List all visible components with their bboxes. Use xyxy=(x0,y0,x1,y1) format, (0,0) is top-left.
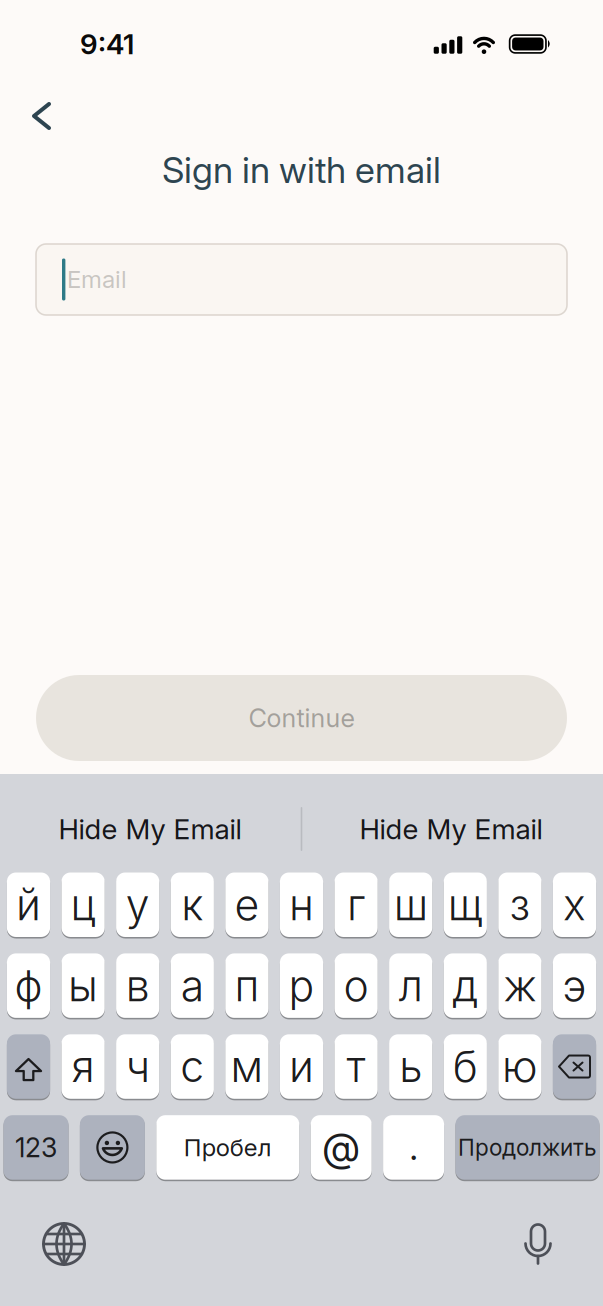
button[interactable] xyxy=(42,1222,86,1266)
button[interactable]: з xyxy=(498,872,541,937)
button[interactable]: Продолжить xyxy=(455,1115,599,1180)
button[interactable]: о xyxy=(334,953,378,1018)
staticText: э xyxy=(562,960,586,1011)
button[interactable]: а xyxy=(171,953,214,1018)
button[interactable]: ш xyxy=(389,872,432,937)
button[interactable]: б xyxy=(444,1034,487,1099)
staticText: а xyxy=(181,960,204,1011)
button[interactable]: щ xyxy=(444,872,487,937)
staticText: ы xyxy=(68,960,98,1011)
staticText: у xyxy=(126,880,150,930)
staticText: б xyxy=(453,1041,478,1092)
button[interactable]: д xyxy=(444,953,487,1018)
staticText: ю xyxy=(502,1041,538,1092)
button[interactable]: х xyxy=(553,872,596,937)
staticText: м xyxy=(230,1041,263,1092)
button[interactable]: ф xyxy=(7,953,50,1018)
button[interactable] xyxy=(524,1223,552,1264)
staticText: я xyxy=(72,1041,95,1092)
button[interactable]: @ xyxy=(311,1115,372,1180)
staticText: п xyxy=(234,960,259,1011)
button[interactable]: е xyxy=(225,872,268,937)
staticText: 9:41 xyxy=(80,27,134,60)
staticText: з xyxy=(509,880,530,930)
button[interactable]: Hide My Email xyxy=(311,801,591,857)
button[interactable]: . xyxy=(383,1115,444,1180)
button[interactable]: ч xyxy=(116,1034,159,1099)
staticText: в xyxy=(126,960,150,1011)
staticText: Sign in with email xyxy=(162,149,441,191)
button[interactable]: я xyxy=(61,1034,105,1099)
staticText: и xyxy=(289,1041,314,1092)
staticText: ч xyxy=(126,1041,150,1092)
staticText: к xyxy=(181,880,203,930)
staticText: й xyxy=(16,880,41,930)
staticText: Продолжить xyxy=(458,1134,597,1161)
staticText: ь xyxy=(399,1041,422,1092)
staticText: л xyxy=(399,960,423,1011)
button[interactable]: ь xyxy=(389,1034,432,1099)
staticText: е xyxy=(234,880,259,930)
button[interactable]: р xyxy=(280,953,323,1018)
button[interactable]: Пробел xyxy=(156,1115,299,1180)
button[interactable]: и xyxy=(280,1034,323,1099)
staticText: д xyxy=(452,960,478,1011)
button[interactable] xyxy=(553,1034,596,1099)
staticText: ж xyxy=(503,960,536,1011)
staticText: х xyxy=(563,880,586,930)
button[interactable]: н xyxy=(280,872,323,937)
staticText: ш xyxy=(394,880,428,930)
button[interactable]: Hide My Email xyxy=(10,801,290,857)
button[interactable]: п xyxy=(225,953,268,1018)
staticText: г xyxy=(347,880,365,930)
button[interactable]: к xyxy=(171,872,214,937)
staticText: о xyxy=(344,960,369,1011)
staticText: 123 xyxy=(15,1132,57,1163)
staticText: т xyxy=(347,1041,366,1092)
button[interactable]: у xyxy=(116,872,159,937)
button[interactable] xyxy=(80,1115,145,1180)
button[interactable] xyxy=(7,1034,50,1099)
button[interactable]: ы xyxy=(61,953,105,1018)
button[interactable]: с xyxy=(171,1034,214,1099)
staticText: Continue xyxy=(248,703,354,733)
button[interactable]: л xyxy=(389,953,432,1018)
staticText: Пробел xyxy=(184,1133,272,1162)
staticText: ц xyxy=(71,880,96,930)
button[interactable]: Continue xyxy=(36,675,567,761)
button[interactable]: ю xyxy=(498,1034,541,1099)
button[interactable]: в xyxy=(116,953,159,1018)
staticText: Hide My Email xyxy=(58,812,241,845)
staticText: Email xyxy=(67,265,127,293)
button[interactable]: э xyxy=(553,953,596,1018)
button[interactable]: й xyxy=(7,872,50,937)
button[interactable]: м xyxy=(225,1034,268,1099)
staticText: р xyxy=(288,960,314,1011)
button[interactable]: ц xyxy=(61,872,105,937)
button[interactable]: Email xyxy=(36,244,567,315)
staticText: Hide My Email xyxy=(359,812,542,845)
staticText: с xyxy=(180,1041,204,1092)
button[interactable] xyxy=(20,94,64,138)
staticText: . xyxy=(410,1127,418,1168)
button[interactable]: г xyxy=(334,872,378,937)
staticText: щ xyxy=(448,880,483,930)
button[interactable]: ж xyxy=(498,953,541,1018)
staticText: @ xyxy=(322,1125,360,1170)
staticText: ф xyxy=(14,960,42,1011)
staticText: н xyxy=(289,880,314,930)
button[interactable]: 123 xyxy=(3,1115,68,1180)
button[interactable]: т xyxy=(334,1034,378,1099)
